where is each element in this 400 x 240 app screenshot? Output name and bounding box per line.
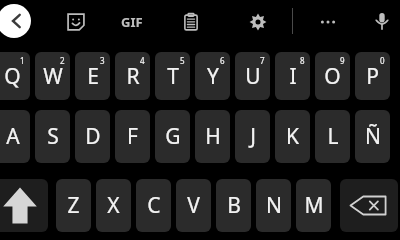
button[interactable]: Q <box>0 52 30 100</box>
button[interactable]: H <box>195 110 230 163</box>
staticText: K <box>286 122 299 151</box>
staticText: 9 <box>340 55 345 66</box>
staticText: M <box>304 191 324 220</box>
button[interactable]: L <box>315 110 350 163</box>
staticText: 1 <box>20 55 25 66</box>
button[interactable]: U <box>235 52 270 100</box>
staticText: D <box>85 122 101 151</box>
button[interactable]: B <box>216 179 251 232</box>
button[interactable]: E <box>75 52 110 100</box>
staticText: 5 <box>180 55 185 66</box>
button[interactable]: D <box>75 110 110 163</box>
staticText: N <box>266 191 282 220</box>
button[interactable]: C <box>136 179 171 232</box>
staticText: 4 <box>140 55 145 66</box>
staticText: W <box>43 62 63 91</box>
button[interactable]: GIF <box>115 8 149 36</box>
button[interactable]: I <box>275 52 310 100</box>
button[interactable]: Shift <box>0 179 48 232</box>
button[interactable]: J <box>235 110 270 163</box>
button[interactable]: O <box>315 52 350 100</box>
staticText: Z <box>67 191 80 220</box>
staticText: V <box>187 191 200 220</box>
staticText: 8 <box>300 55 305 66</box>
staticText: 7 <box>260 55 265 66</box>
button[interactable]: A <box>0 110 30 163</box>
button[interactable]: P <box>355 52 390 100</box>
staticText: J <box>250 122 256 151</box>
button[interactable]: N <box>256 179 291 232</box>
staticText: 0 <box>380 55 385 66</box>
button[interactable]: R <box>115 52 150 100</box>
staticText: F <box>127 122 138 151</box>
button[interactable]: M <box>296 179 331 232</box>
button[interactable]: W <box>35 52 70 100</box>
staticText: Q <box>4 62 21 91</box>
button[interactable]: X <box>96 179 131 232</box>
staticText: R <box>126 62 140 91</box>
staticText: L <box>327 122 339 151</box>
staticText: P <box>366 62 379 91</box>
button[interactable]: Stickers <box>62 8 90 36</box>
button[interactable]: Ñ <box>355 110 390 163</box>
button[interactable]: Z <box>56 179 91 232</box>
button[interactable]: More options <box>314 8 342 36</box>
button[interactable]: Back <box>0 4 31 38</box>
button[interactable]: Clipboard <box>177 8 205 36</box>
staticText: 2 <box>60 55 65 66</box>
staticText: E <box>87 62 99 91</box>
button[interactable]: Settings <box>244 8 272 36</box>
staticText: GIF <box>121 13 143 31</box>
staticText: C <box>147 191 161 220</box>
button[interactable]: K <box>275 110 310 163</box>
button[interactable]: F <box>115 110 150 163</box>
button[interactable]: Backspace <box>340 179 398 232</box>
button[interactable]: S <box>35 110 70 163</box>
staticText: B <box>227 191 241 220</box>
staticText: S <box>47 122 59 151</box>
button[interactable]: V <box>176 179 211 232</box>
button[interactable]: Voice input <box>368 7 396 35</box>
staticText: H <box>205 122 221 151</box>
staticText: G <box>165 122 181 151</box>
button[interactable]: G <box>155 110 190 163</box>
staticText: I <box>289 62 297 91</box>
staticText: O <box>324 62 341 91</box>
button[interactable]: T <box>155 52 190 100</box>
staticText: Y <box>207 62 219 91</box>
staticText: X <box>107 191 120 220</box>
staticText: A <box>6 122 20 151</box>
staticText: 6 <box>220 55 225 66</box>
staticText: U <box>245 62 261 91</box>
button[interactable]: Y <box>195 52 230 100</box>
staticText: 3 <box>100 55 105 66</box>
staticText: T <box>167 62 179 91</box>
staticText: Ñ <box>365 122 381 151</box>
